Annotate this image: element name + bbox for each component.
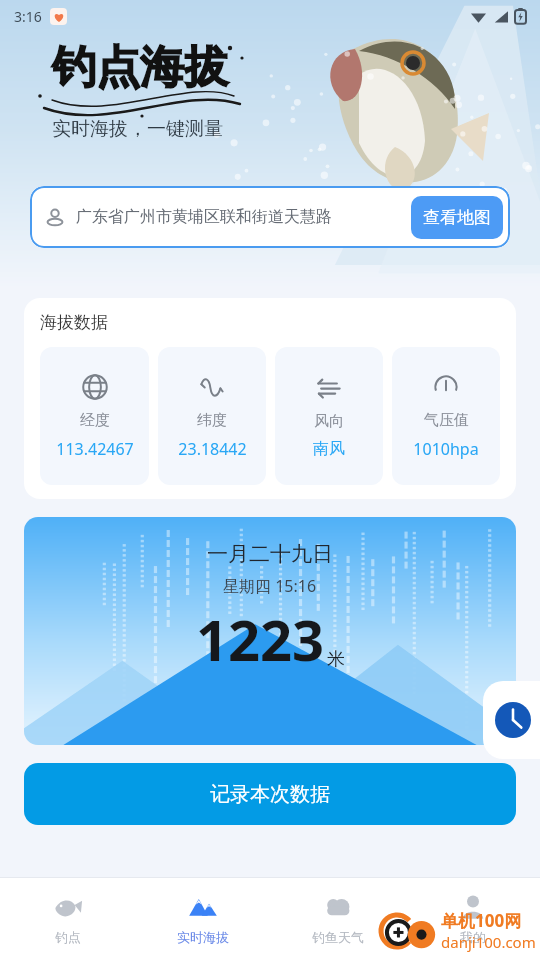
staticText: 钓鱼天气 <box>312 929 364 945</box>
button[interactable]: 记录本次数据 <box>24 763 516 825</box>
staticText: 查看地图 <box>423 207 491 228</box>
staticText: 钓点海拔 <box>52 40 228 95</box>
staticText: 一月二十九日 <box>207 541 333 567</box>
staticText: 米 <box>327 648 345 671</box>
button[interactable]: 查看地图 <box>411 196 503 239</box>
button[interactable]: 纬度 <box>158 347 266 485</box>
staticText: 经度 <box>80 411 110 430</box>
staticText: 1010hpa <box>413 438 479 460</box>
button[interactable]: 经度 <box>40 347 149 485</box>
staticText: 南风 <box>313 439 345 459</box>
button[interactable]: 实时海拔 <box>135 878 270 960</box>
button[interactable]: Location <box>44 186 503 248</box>
button[interactable]: 我的 <box>405 878 540 960</box>
staticText: 气压值 <box>424 411 469 430</box>
staticText: 1223 <box>196 601 325 677</box>
staticText: 广东省广州市黄埔区联和街道天慧路 <box>76 207 405 227</box>
staticText: 海拔数据 <box>40 312 108 333</box>
button[interactable]: History <box>483 681 540 759</box>
button[interactable]: 气压值 <box>392 347 500 485</box>
staticText: 113.42467 <box>56 438 134 460</box>
staticText: 3:16 <box>14 7 42 26</box>
staticText: 我的 <box>460 929 486 945</box>
staticText: 风向 <box>314 412 344 431</box>
staticText: 纬度 <box>197 411 227 430</box>
staticText: 记录本次数据 <box>210 782 330 807</box>
staticText: 单机100网 <box>441 909 522 932</box>
staticText: 钓点 <box>55 929 81 945</box>
staticText: 星期四 15:16 <box>223 575 317 597</box>
staticText: 实时海拔 <box>177 929 229 945</box>
button[interactable]: 钓鱼天气 <box>270 878 405 960</box>
staticText: danji100.com <box>441 932 536 952</box>
staticText: 实时海拔，一键测量 <box>52 117 223 141</box>
button[interactable]: 风向 <box>275 347 383 485</box>
staticText: 23.18442 <box>178 438 247 460</box>
button[interactable]: 一月二十九日 <box>24 517 516 745</box>
other: Location <box>44 206 66 228</box>
button[interactable]: 钓点 <box>0 878 135 960</box>
